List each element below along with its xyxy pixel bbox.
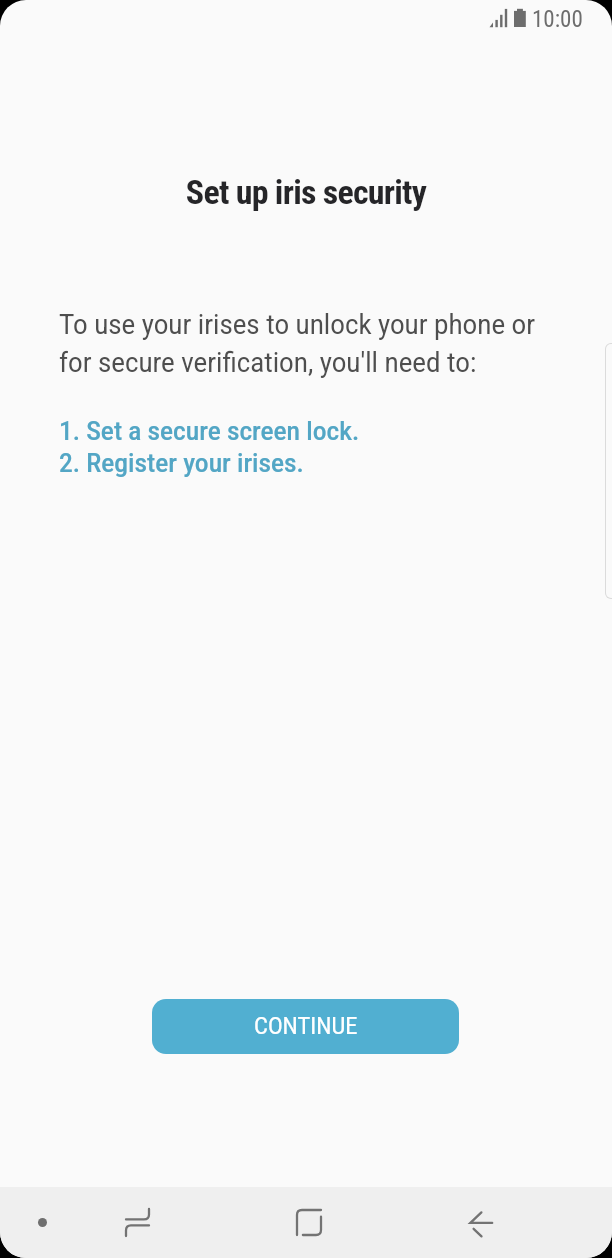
staticText: 1. Set a secure screen lock. 2. Register…	[59, 416, 360, 479]
staticText: Set up iris security	[0, 172, 612, 212]
button[interactable]: Home	[273, 1187, 344, 1258]
staticText: 10:00	[532, 6, 583, 33]
staticText: To use your irises to unlock your phone …	[59, 309, 536, 379]
staticText: CONTINUE	[254, 1013, 358, 1040]
button[interactable]: Back	[445, 1187, 516, 1258]
button[interactable]: Hide keyboard	[7, 1187, 78, 1258]
button[interactable]: Recent apps	[102, 1187, 173, 1258]
button[interactable]: CONTINUE	[152, 999, 459, 1054]
